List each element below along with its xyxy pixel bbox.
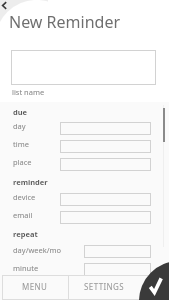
button[interactable]: Save reminder [139, 261, 169, 300]
staticText: MENU [22, 281, 48, 292]
button[interactable] [60, 140, 151, 153]
staticText: New Reminder [9, 11, 121, 33]
button[interactable] [60, 158, 151, 171]
staticText: place [13, 157, 32, 167]
staticText: repeat [13, 229, 38, 239]
button[interactable] [11, 50, 156, 85]
button[interactable] [84, 245, 151, 258]
button[interactable] [60, 211, 151, 224]
staticText: due [13, 107, 28, 117]
staticText: device [13, 192, 36, 202]
button[interactable]: Back [0, 0, 14, 14]
staticText: minute [13, 263, 39, 273]
staticText: SETTINGS [84, 281, 125, 292]
staticText: time [13, 139, 29, 149]
staticText: day [13, 121, 26, 131]
button[interactable]: MENU [2, 275, 68, 300]
button[interactable] [60, 122, 151, 135]
staticText: reminder [13, 177, 48, 187]
staticText: list name [12, 87, 45, 97]
button[interactable]: SETTINGS [69, 275, 140, 300]
staticText: day/week/mo [13, 245, 62, 255]
button[interactable] [60, 193, 151, 206]
staticText: email [13, 210, 33, 220]
button[interactable] [84, 263, 151, 276]
